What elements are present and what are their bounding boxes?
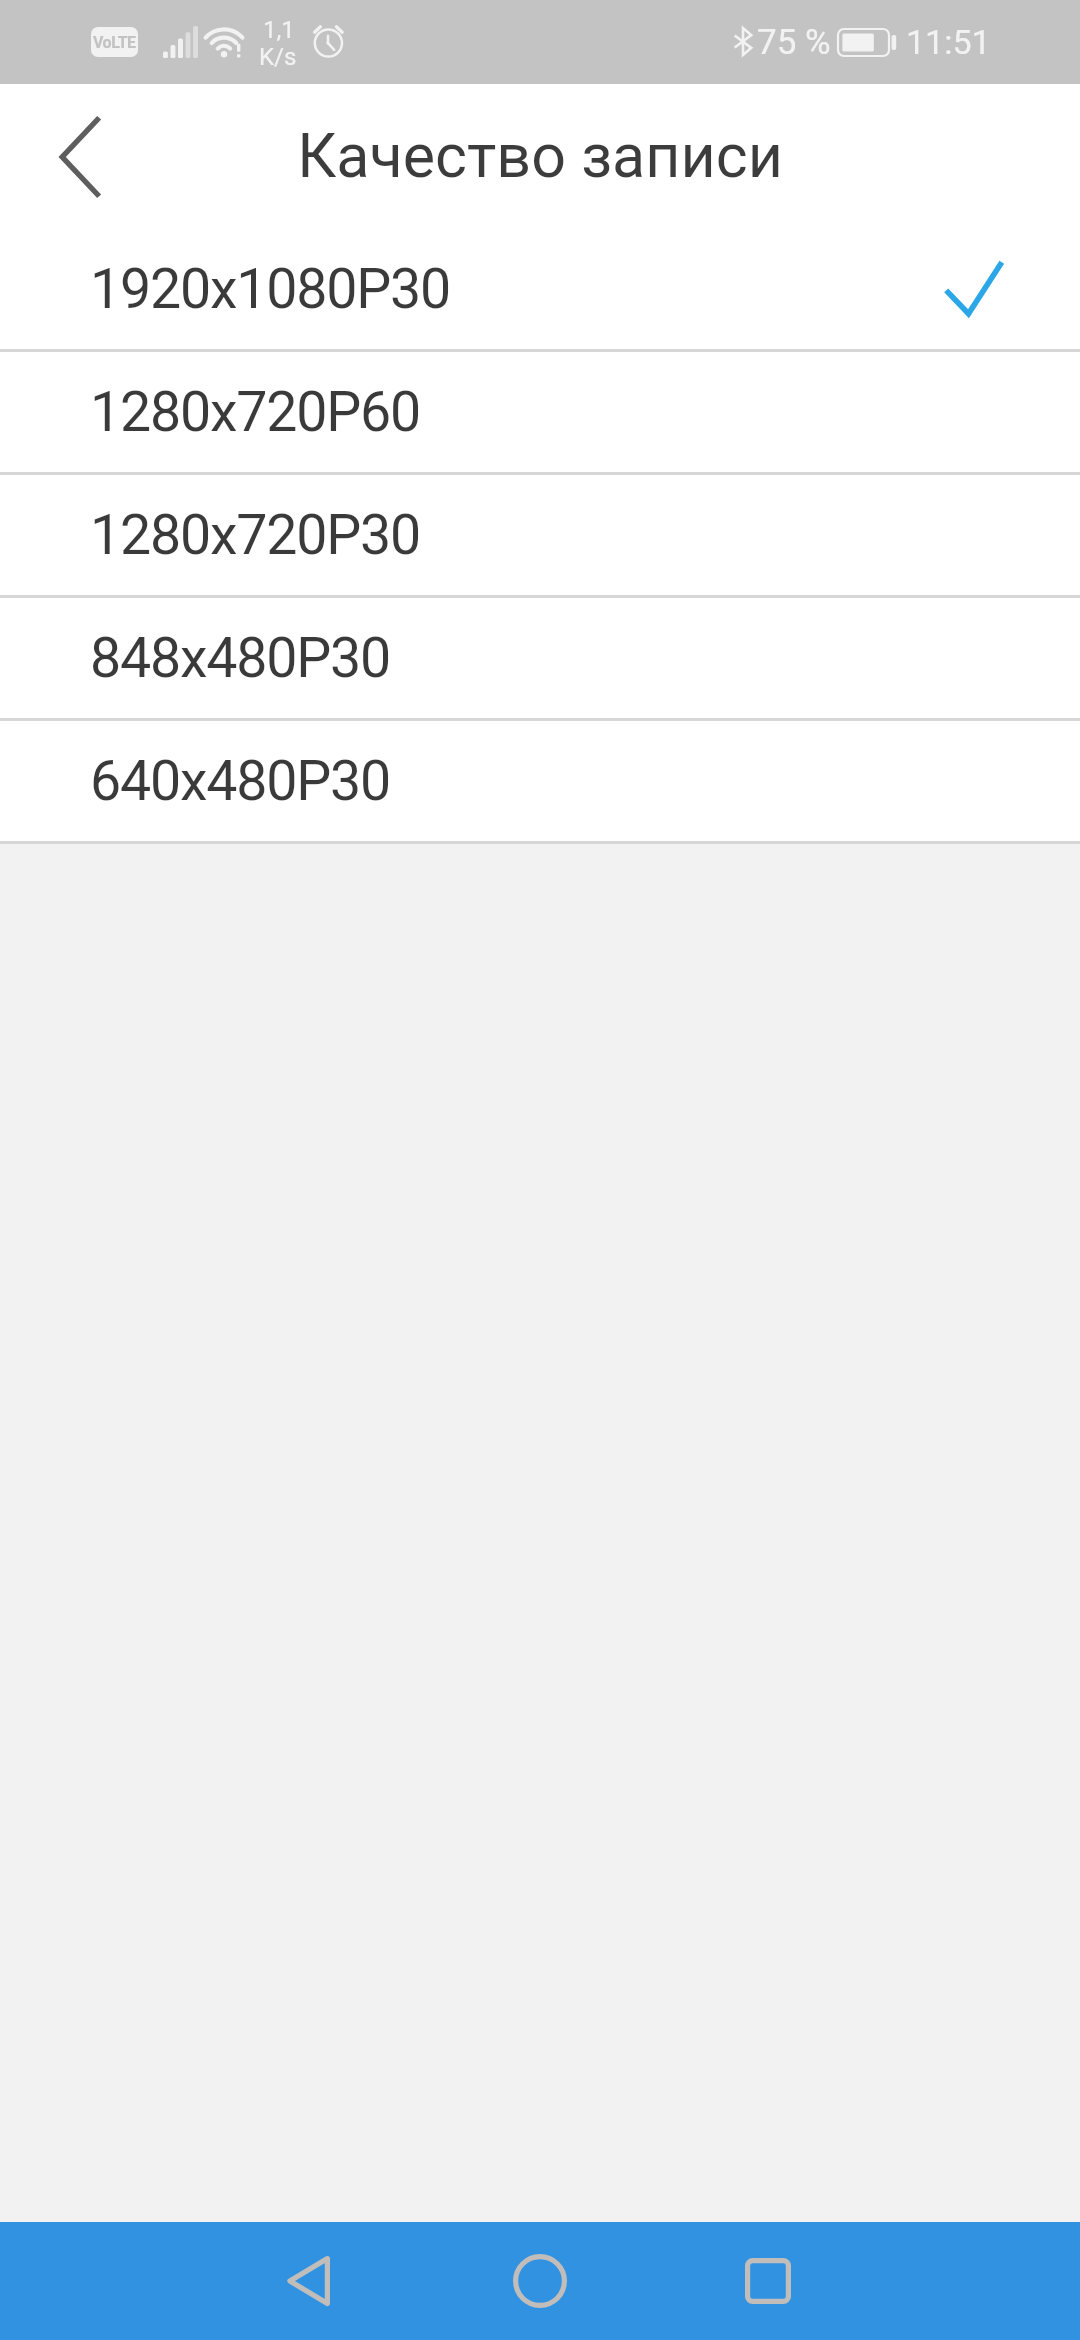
button[interactable]: 848x480P30 — [0, 598, 1080, 718]
button[interactable]: Back — [248, 2222, 368, 2340]
button[interactable]: 1280x720P30 — [0, 475, 1080, 595]
staticText: Качество записи — [297, 120, 783, 191]
button[interactable]: 1920x1080P30 — [0, 229, 1080, 349]
staticText: 1,1 — [263, 16, 295, 44]
button[interactable]: Home — [480, 2222, 600, 2340]
staticText: K/s — [259, 43, 297, 71]
staticText: 75 % — [757, 22, 831, 63]
staticText: 1280x720P30 — [90, 503, 421, 568]
button[interactable]: 640x480P30 — [0, 721, 1080, 841]
staticText: 1920x1080P30 — [90, 257, 451, 322]
staticText: 1280x720P60 — [90, 380, 421, 445]
staticText: 11:51 — [906, 22, 991, 62]
staticText: 848x480P30 — [90, 626, 391, 691]
staticText: VoLTE — [93, 33, 136, 52]
button[interactable]: Back — [9, 87, 149, 227]
staticText: 640x480P30 — [90, 749, 391, 814]
button[interactable]: Recent apps — [708, 2222, 828, 2340]
button[interactable]: 1280x720P60 — [0, 352, 1080, 472]
